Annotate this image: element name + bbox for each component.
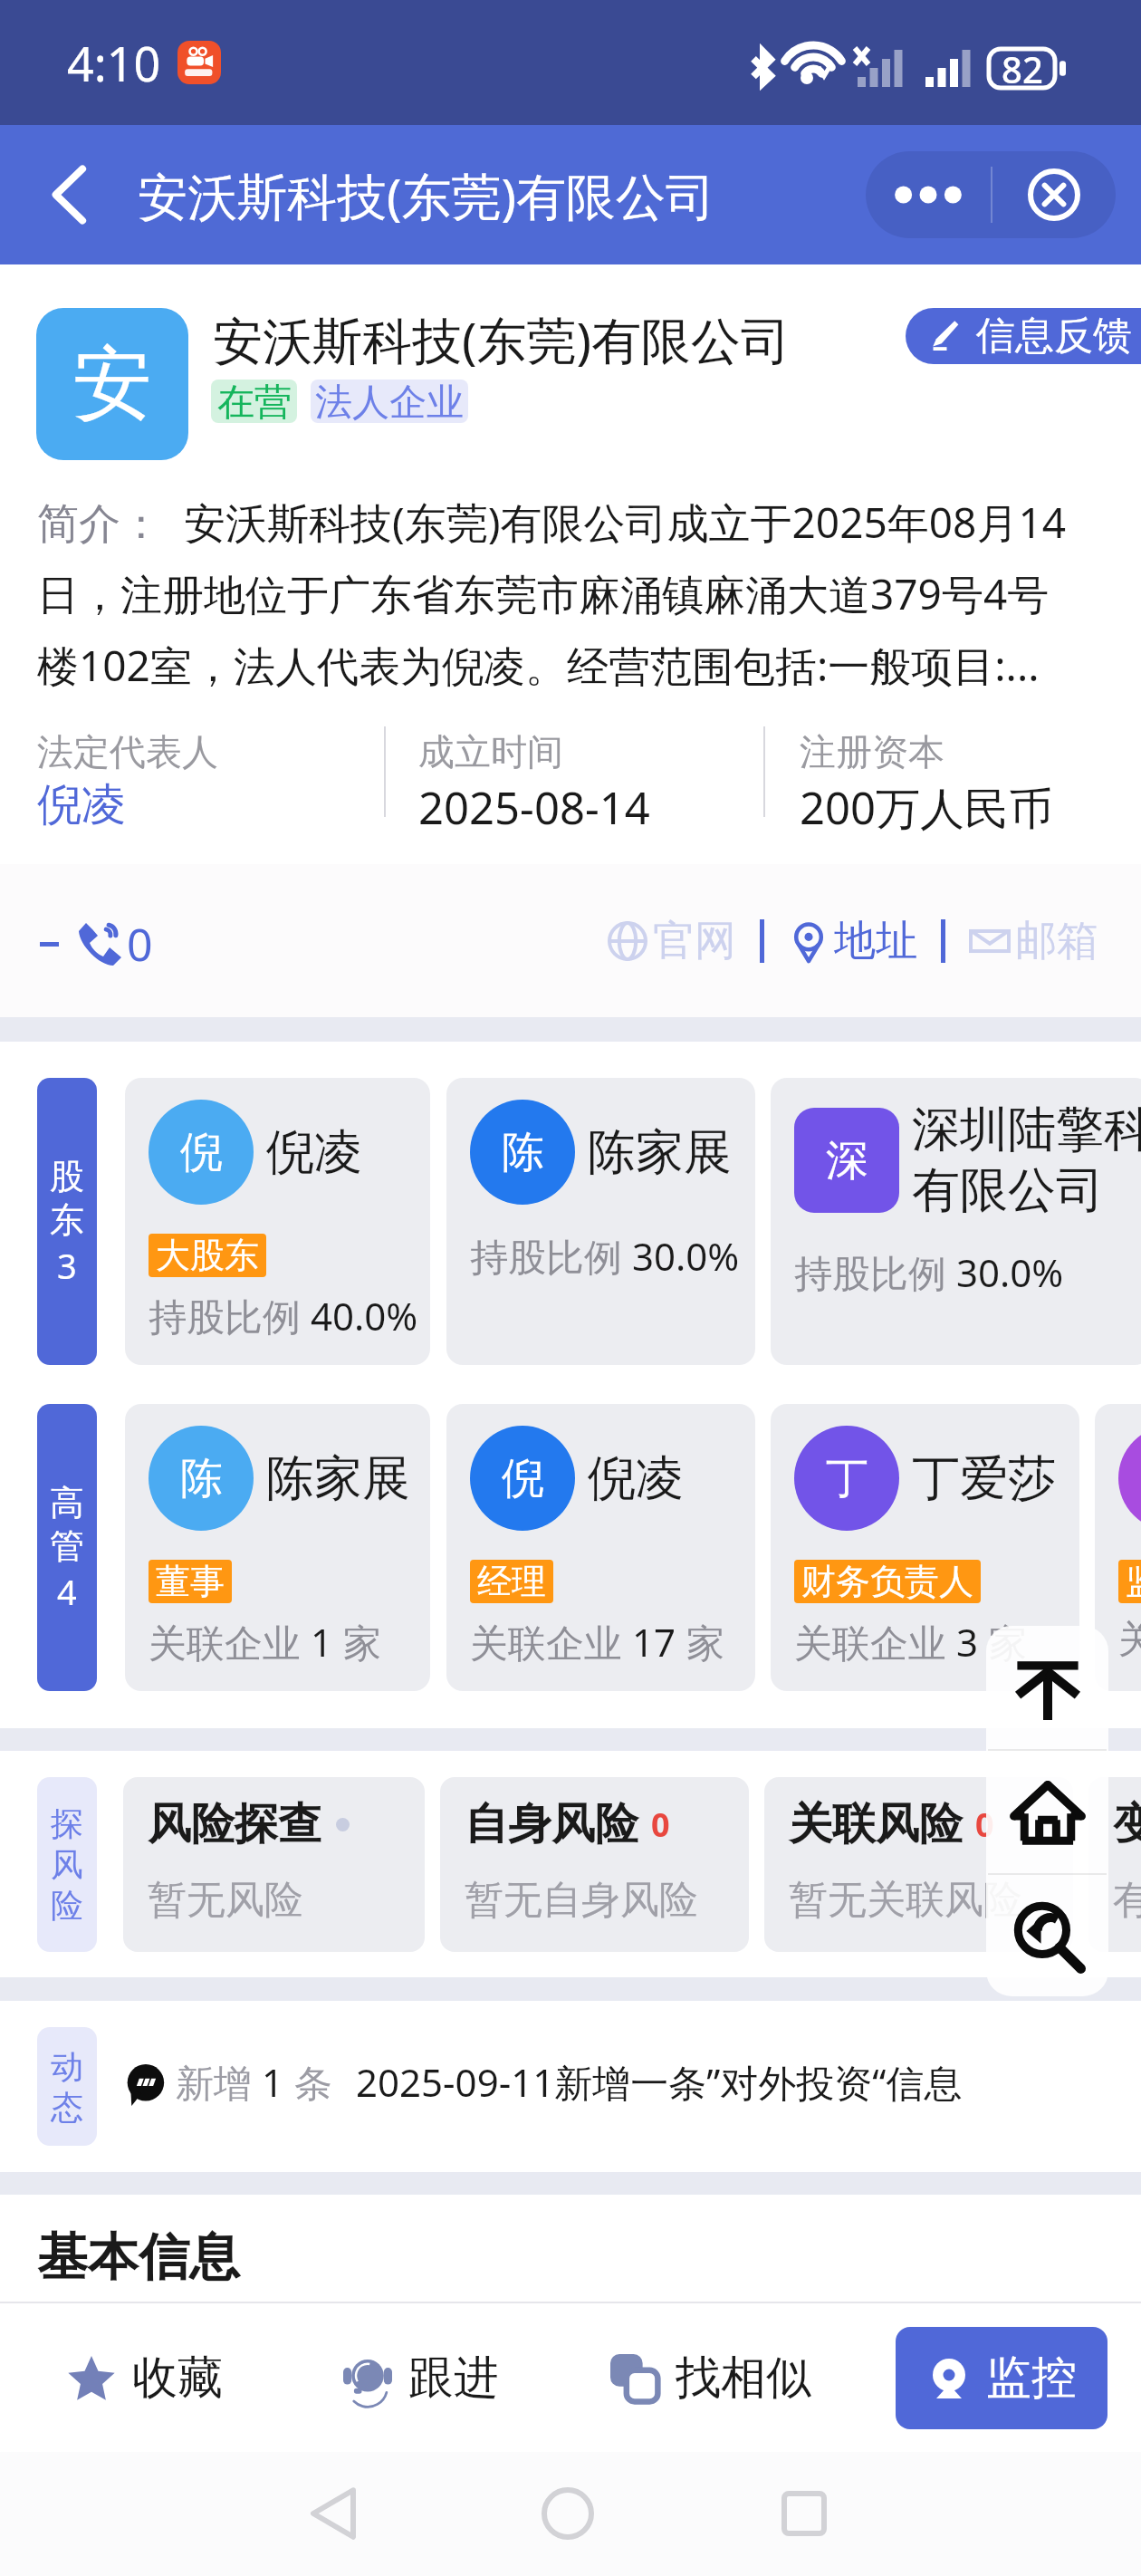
staticText: 暂无风险 [148, 1876, 303, 1925]
button[interactable]: 信息反馈 [906, 308, 1141, 364]
staticText: 30.0% [956, 1246, 1064, 1298]
button[interactable]: 高 [37, 1404, 97, 1691]
button[interactable]: 邮箱 [969, 906, 1098, 976]
staticText: 暂无自身风险 [465, 1876, 698, 1925]
staticText: 陈家展 [266, 1448, 410, 1509]
staticText: 监事 [1126, 1560, 1141, 1603]
staticText: 2025-08-14 [418, 777, 650, 838]
staticText: 200万人民币 [800, 777, 1054, 838]
staticText: 82 [1002, 44, 1043, 93]
staticText: 4:10 [67, 31, 161, 95]
staticText: 条 [284, 2056, 332, 2108]
staticText: 信息反馈 [976, 312, 1132, 360]
button[interactable]: Recent apps [759, 2468, 849, 2559]
staticText: 关联企业 [1118, 1616, 1141, 1664]
staticText: 探 [51, 1803, 83, 1844]
staticText: 家 [979, 1616, 1027, 1668]
staticText: 变更风险 [1113, 1797, 1141, 1851]
button[interactable]: 动 [37, 2027, 97, 2146]
staticText: 持股比例 [149, 1290, 311, 1341]
button[interactable]: More options [866, 151, 991, 238]
staticText: 简介： 安沃斯科技(东莞)有限公司成立于2025年08月14日，注册地位于广东省… [37, 494, 1079, 693]
button[interactable]: 风险探查 [123, 1777, 425, 1952]
staticText: 成立时间 [418, 729, 563, 774]
staticText: 丁 [826, 1452, 868, 1505]
staticText: 家 [676, 1616, 724, 1668]
button[interactable]: 倪 [446, 1404, 755, 1691]
staticText: 高 [50, 1481, 84, 1524]
staticText: 自身风险 [465, 1797, 638, 1851]
staticText: 监控 [986, 2350, 1077, 2407]
button[interactable]: Phone [36, 897, 168, 987]
staticText: 陈家展 [588, 1122, 732, 1183]
button[interactable]: More options [866, 151, 1116, 238]
button[interactable]: 变更风险 [1088, 1777, 1141, 1952]
staticText: 家 [333, 1616, 381, 1668]
staticText: 董事 [156, 1560, 225, 1603]
button[interactable]: 找相似 [603, 2335, 819, 2421]
staticText: 风险探查 [148, 1797, 321, 1851]
staticText: 关联企业 [794, 1616, 956, 1668]
staticText: 关联企业 [149, 1616, 311, 1668]
staticText: 0 [975, 1802, 994, 1847]
staticText: 动 [51, 2046, 83, 2087]
button[interactable]: 深 [771, 1078, 1141, 1365]
button[interactable]: 官网 [607, 906, 736, 976]
staticText: 态 [51, 2087, 83, 2128]
staticText: 管 [50, 1524, 84, 1568]
staticText: 3 [956, 1616, 979, 1668]
staticText: 持股比例 [470, 1230, 632, 1282]
button[interactable]: 监控 [896, 2327, 1107, 2429]
staticText: 东 [50, 1198, 84, 1242]
staticText: 有1 [1113, 1871, 1141, 1925]
staticText: 新增 [176, 2056, 262, 2108]
staticText: 地址 [834, 915, 917, 967]
staticText: 财务负责人 [801, 1560, 973, 1603]
button[interactable]: 自身风险 [440, 1777, 749, 1952]
staticText: 倪凌 [588, 1448, 684, 1509]
staticText: 官网 [653, 915, 736, 967]
staticText: 找相似 [676, 2350, 811, 2407]
staticText: 安沃斯科技(东莞)有限公司 [138, 161, 715, 229]
button[interactable]: 收藏 [60, 2335, 230, 2421]
staticText: 1 [311, 1616, 333, 1668]
staticText: 0 [127, 913, 153, 975]
staticText: 17 [632, 1616, 676, 1668]
button[interactable]: Home [986, 1751, 1108, 1873]
staticText: 法定代表人 [37, 729, 218, 774]
button[interactable]: Close [992, 151, 1116, 238]
button[interactable]: Back [288, 2468, 379, 2559]
staticText: 陈 [502, 1126, 544, 1179]
button[interactable]: Search again [986, 1875, 1108, 1996]
staticText: 经理 [477, 1560, 546, 1603]
button[interactable]: 地址 [788, 906, 917, 976]
staticText: 暂无关联风险 [789, 1876, 1022, 1925]
staticText: 倪 [502, 1452, 544, 1505]
button[interactable]: 陈 [125, 1404, 430, 1691]
staticText: 险 [51, 1885, 83, 1926]
button[interactable]: 探 [37, 1777, 97, 1952]
staticText: 关联企业 [470, 1616, 632, 1668]
staticText: 风 [51, 1844, 83, 1885]
staticText: 倪凌 [266, 1122, 362, 1183]
button[interactable]: 陈 [446, 1078, 755, 1365]
button[interactable]: Home [523, 2468, 613, 2559]
button[interactable]: Back [0, 125, 138, 264]
button[interactable]: 监 [1095, 1404, 1141, 1691]
staticText: 邮箱 [1015, 915, 1098, 967]
button[interactable]: 倪 [125, 1078, 430, 1365]
button[interactable]: 丁 [771, 1404, 1079, 1691]
button[interactable]: 跟进 [336, 2335, 506, 2421]
staticText: 40.0% [311, 1290, 418, 1341]
staticText: 收藏 [132, 2350, 223, 2407]
button[interactable]: Scroll to top [986, 1626, 1108, 1749]
button[interactable]: 关联风险 [764, 1777, 1073, 1952]
staticText: 倪 [180, 1126, 223, 1179]
button[interactable]: 股 [37, 1078, 97, 1365]
staticText: 有限公司 [912, 1160, 1104, 1221]
staticText: 股 [50, 1155, 84, 1198]
staticText: 陈 [180, 1452, 223, 1505]
staticText: 基本信息 [37, 2225, 240, 2290]
staticText: 法人企业 [315, 380, 464, 423]
staticText: 4 [57, 1568, 77, 1615]
